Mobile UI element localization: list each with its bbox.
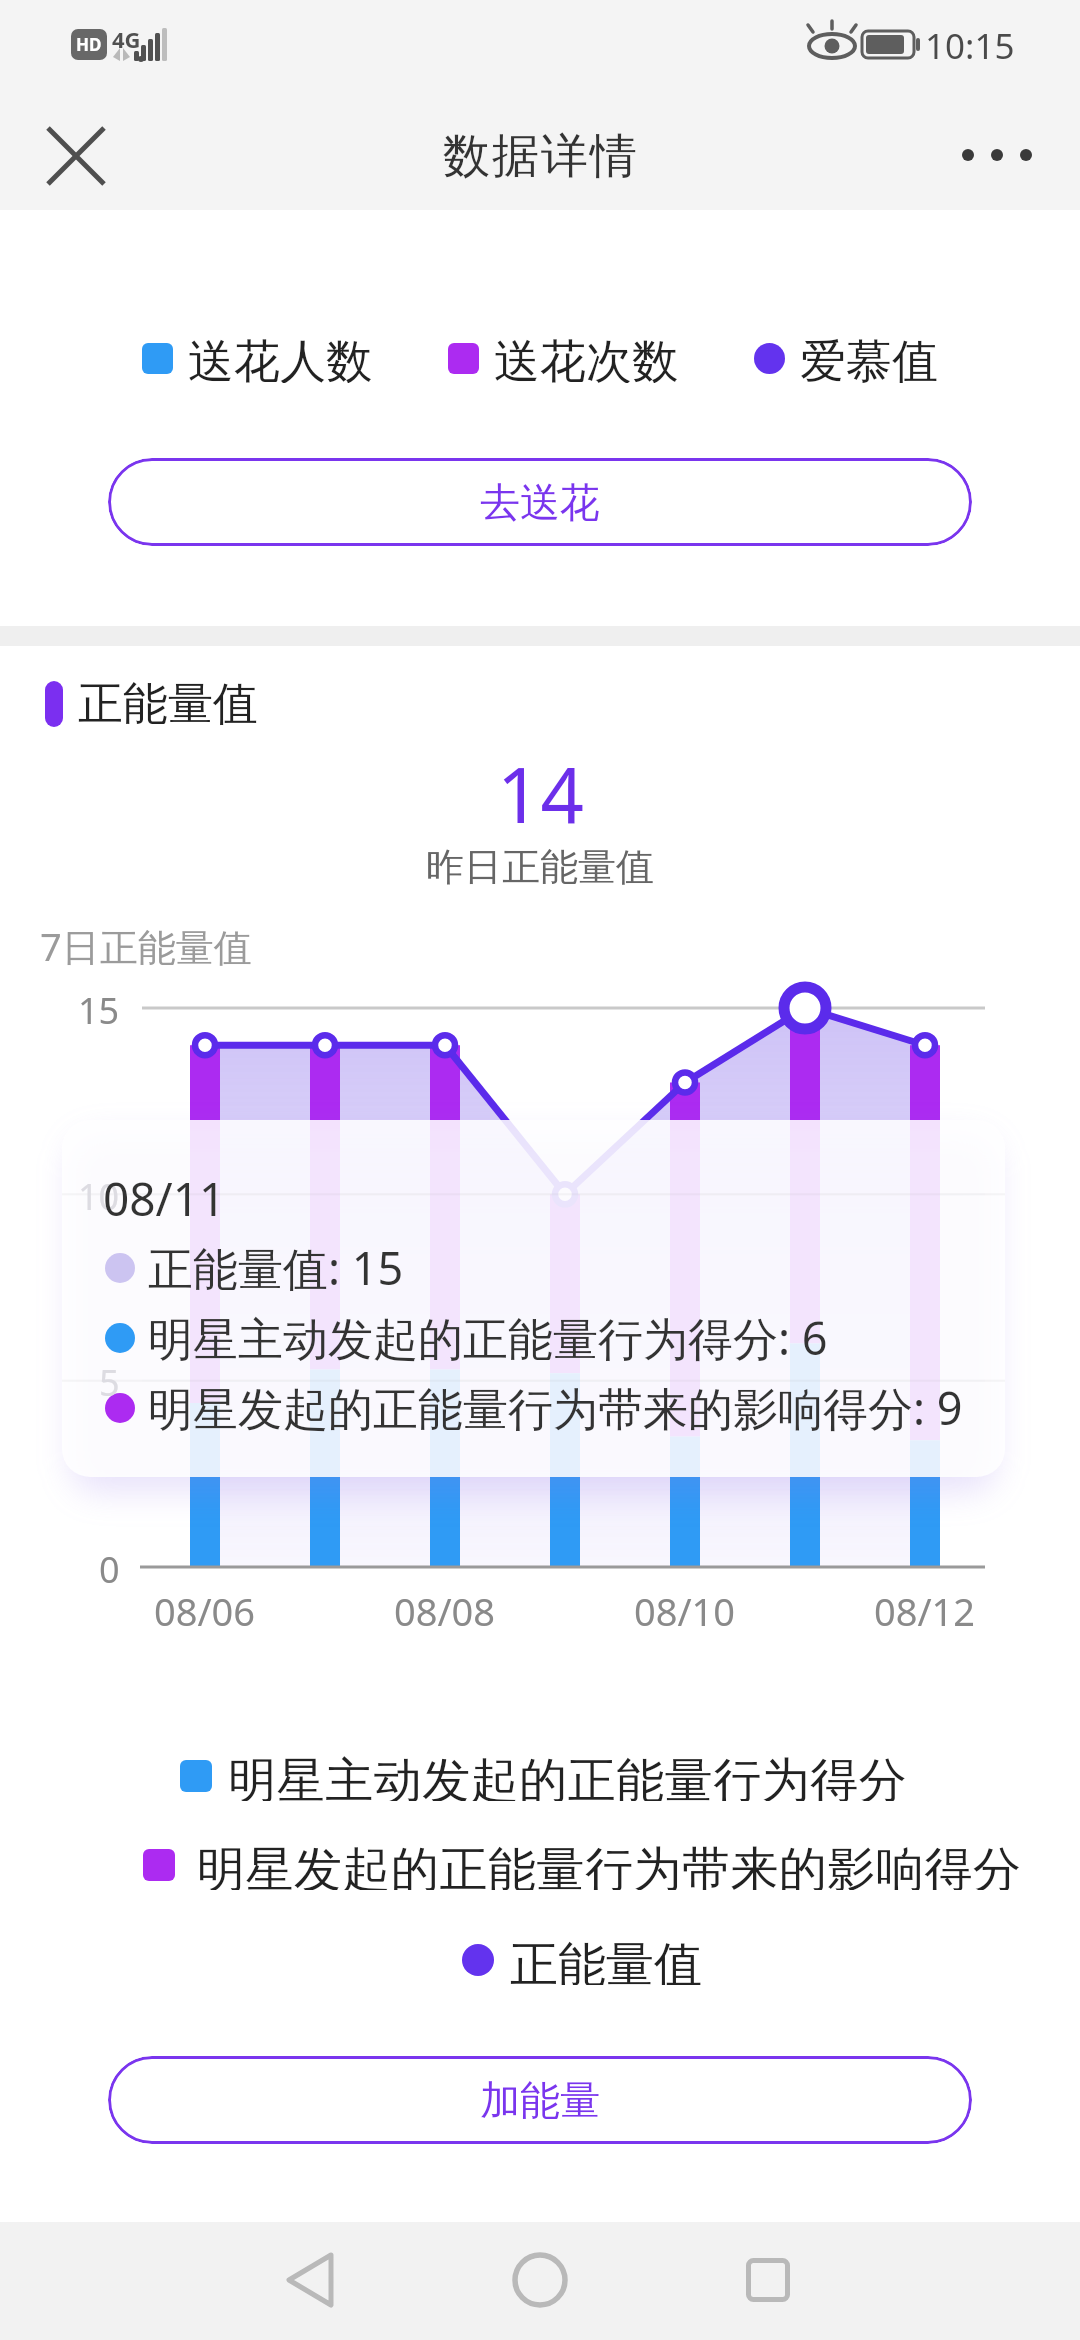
staticText: 数据详情 [442, 127, 638, 186]
staticText: 去送花 [480, 477, 600, 527]
staticText: 0 [99, 1545, 120, 1589]
button[interactable] [708, 2230, 828, 2330]
staticText: 08/11 [103, 1167, 226, 1230]
button[interactable]: 加能量 [108, 2056, 972, 2144]
staticText: 爱慕值 [800, 333, 938, 383]
staticText: 正能量值: 15 [148, 1237, 404, 1298]
staticText: 明星主动发起的正能量行为得分: 6 [148, 1307, 828, 1368]
staticText: HD [76, 33, 102, 56]
staticText: 08/12 [874, 1585, 976, 1631]
staticText: 10:15 [925, 22, 1015, 70]
staticText: 5 [99, 1358, 120, 1402]
button[interactable] [30, 116, 122, 196]
staticText: 正能量值 [78, 676, 258, 733]
button[interactable] [250, 2230, 370, 2330]
staticText: 正能量值 [510, 1935, 702, 1985]
button[interactable]: 去送花 [108, 458, 972, 546]
staticText: 14 [497, 742, 584, 832]
staticText: 明星主动发起的正能量行为得分 [228, 1751, 907, 1801]
staticText: 08/06 [154, 1585, 256, 1631]
staticText: 送花人数 [188, 333, 372, 383]
staticText: 昨日正能量值 [426, 843, 654, 891]
staticText: 送花次数 [494, 333, 678, 383]
staticText: 4G [112, 24, 141, 54]
staticText: 加能量 [480, 2075, 600, 2125]
button[interactable] [950, 110, 1062, 200]
staticText: 08/08 [394, 1585, 496, 1631]
staticText: 明星发起的正能量行为带来的影响得分 [197, 1840, 1022, 1890]
staticText: 10 [78, 1172, 120, 1216]
staticText: 08/10 [634, 1585, 736, 1631]
staticText: 明星发起的正能量行为带来的影响得分: 9 [148, 1377, 963, 1438]
staticText: 7日正能量值 [40, 920, 252, 972]
button[interactable] [480, 2230, 600, 2330]
staticText: 15 [78, 986, 120, 1030]
